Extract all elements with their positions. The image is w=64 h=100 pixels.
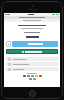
button[interactable] (12, 41, 58, 47)
button[interactable]: Address bar (4, 16, 60, 19)
button[interactable]: Email a friend (6, 67, 58, 71)
button[interactable]: Quantity (6, 41, 11, 47)
button[interactable]: Home (29, 90, 36, 97)
button[interactable]: Add to wishlist (6, 57, 58, 61)
button[interactable]: Add to comparison (6, 62, 58, 66)
button[interactable] (6, 49, 58, 54)
